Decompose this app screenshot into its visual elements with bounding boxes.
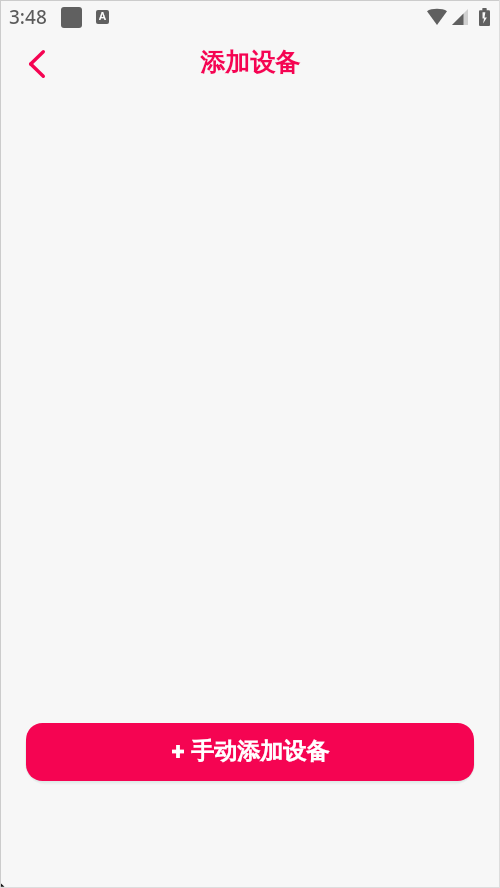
button[interactable]: 手动添加设备 bbox=[26, 723, 474, 781]
staticText: 3:48 bbox=[9, 4, 47, 30]
staticText: 手动添加设备 bbox=[191, 737, 329, 766]
staticText: 添加设备 bbox=[200, 47, 300, 78]
staticText: A bbox=[99, 10, 106, 23]
button[interactable]: Back bbox=[15, 42, 59, 86]
